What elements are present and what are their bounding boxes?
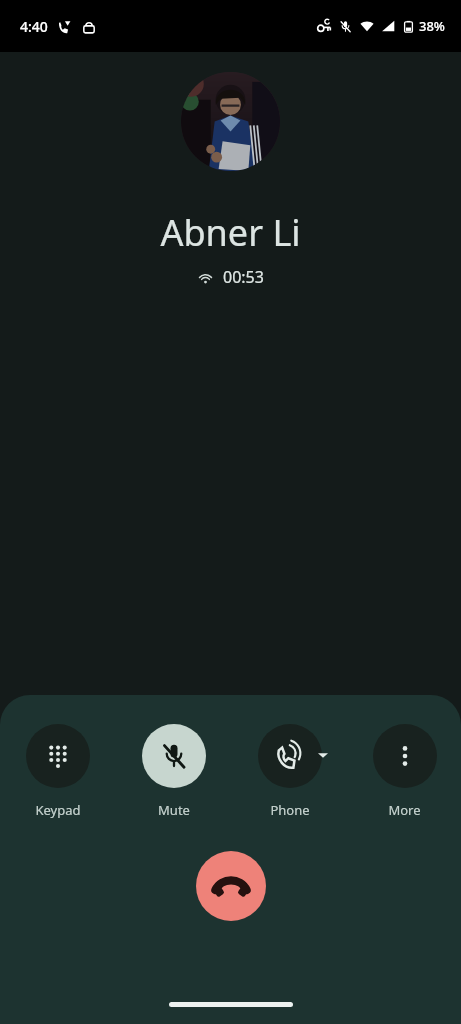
button[interactable]: More (348, 724, 461, 819)
button[interactable]: End call (196, 851, 266, 921)
staticText: 00:53 (223, 266, 264, 288)
staticText: Abner Li (160, 208, 301, 257)
button[interactable]: Mute (116, 724, 232, 819)
staticText: Mute (158, 801, 190, 819)
button[interactable]: Phone (232, 724, 348, 819)
staticText: Phone (270, 801, 310, 819)
staticText: 38% (419, 17, 445, 35)
staticText: Keypad (35, 801, 81, 819)
staticText: 4:40 (20, 17, 48, 36)
staticText: More (388, 801, 421, 819)
button[interactable]: Keypad (0, 724, 116, 819)
